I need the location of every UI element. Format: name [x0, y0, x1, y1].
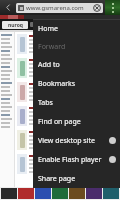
- staticText: Enable Flash player: [38, 155, 109, 165]
- button[interactable]: www.gsmarena.com: [16, 3, 103, 13]
- staticText: View desktop site: [38, 136, 109, 146]
- button[interactable]: View desktop site: [33, 131, 120, 150]
- staticText: Home: [38, 24, 116, 34]
- staticText: Forward: [38, 42, 116, 52]
- button[interactable]: Add to: [33, 56, 120, 74]
- button[interactable]: Tabs: [33, 93, 120, 112]
- button[interactable]: Find on page: [33, 112, 120, 131]
- button[interactable]: Home: [33, 20, 120, 38]
- button[interactable]: Stop loading: [93, 4, 101, 12]
- button[interactable]: Bookmarks: [33, 74, 120, 93]
- staticText: Bookmarks: [38, 79, 116, 89]
- button[interactable]: Share page: [33, 169, 120, 188]
- button[interactable]: Back: [0, 0, 16, 15]
- button: Forward: [33, 38, 120, 56]
- staticText: Tabs: [38, 98, 116, 108]
- button[interactable]: Enable Flash player: [33, 150, 120, 169]
- button[interactable]: More options: [105, 0, 120, 15]
- staticText: Find on page: [38, 117, 116, 127]
- staticText: nuroq: [8, 22, 23, 29]
- staticText: Share page: [38, 174, 116, 184]
- staticText: Add to: [38, 60, 116, 70]
- staticText: www.gsmarena.com: [26, 4, 93, 12]
